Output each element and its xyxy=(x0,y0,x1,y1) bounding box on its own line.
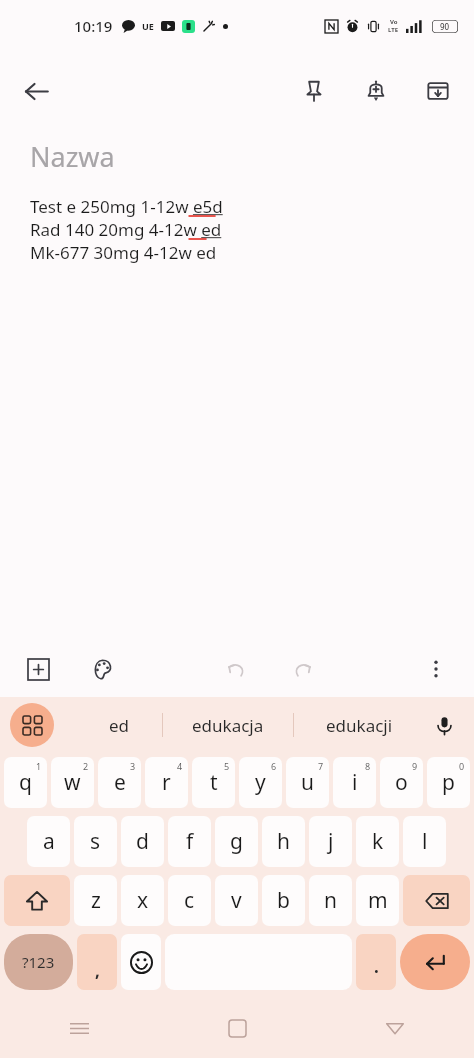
staticText: n xyxy=(324,886,337,915)
button[interactable]: u xyxy=(286,757,329,808)
staticText: b xyxy=(277,886,290,915)
button[interactable]: d xyxy=(121,816,164,867)
staticText: m xyxy=(368,886,388,915)
staticText: edukacja xyxy=(192,714,264,737)
button[interactable]: z xyxy=(74,875,117,926)
button[interactable]: Voice input xyxy=(424,705,464,745)
button[interactable]: c xyxy=(168,875,211,926)
button[interactable]: Back xyxy=(316,998,474,1058)
button[interactable]: Home xyxy=(158,998,316,1058)
staticText: 2 xyxy=(83,760,89,772)
staticText: f xyxy=(186,827,194,856)
staticText: 0 xyxy=(459,760,465,772)
button[interactable]: Emoji xyxy=(121,934,161,990)
button[interactable]: s xyxy=(74,816,117,867)
staticText: c xyxy=(184,886,195,915)
staticText: r xyxy=(162,768,171,797)
button[interactable]: p xyxy=(427,757,470,808)
staticText: LTE xyxy=(388,26,399,34)
staticText: z xyxy=(91,886,101,915)
button[interactable]: Back xyxy=(12,67,60,115)
staticText: Vo xyxy=(390,18,398,26)
button[interactable]: o xyxy=(380,757,423,808)
staticText: 6 xyxy=(271,760,277,772)
staticText: 8 xyxy=(365,760,371,772)
staticText: ?123 xyxy=(22,952,55,972)
button[interactable]: . xyxy=(356,934,396,990)
button[interactable]: x xyxy=(121,875,164,926)
staticText: 5 xyxy=(224,760,230,772)
button[interactable]: m xyxy=(356,875,399,926)
button[interactable]: More options xyxy=(414,647,458,691)
staticText: 1 xyxy=(36,760,42,772)
staticText: g xyxy=(230,827,243,856)
button[interactable]: Backspace xyxy=(403,875,470,926)
button[interactable]: e xyxy=(98,757,141,808)
staticText: q xyxy=(19,768,32,797)
staticText: x xyxy=(137,886,149,915)
staticText: Test e 250mg 1-12w e5d xyxy=(30,195,223,218)
button[interactable]: Enter xyxy=(400,934,470,990)
button[interactable]: w xyxy=(51,757,94,808)
staticText: 3 xyxy=(130,760,136,772)
staticText: o xyxy=(395,768,408,797)
staticText: e xyxy=(114,768,126,797)
staticText: u xyxy=(301,768,314,797)
button[interactable]: edukacja xyxy=(163,697,293,753)
button[interactable]: v xyxy=(215,875,258,926)
button[interactable]: l xyxy=(403,816,446,867)
button[interactable]: Recents xyxy=(0,998,158,1058)
staticText: i xyxy=(352,768,358,797)
button[interactable]: k xyxy=(356,816,399,867)
button[interactable]: ed xyxy=(76,697,162,753)
staticText: , xyxy=(95,959,100,982)
button[interactable]: Keyboard menu xyxy=(10,703,54,747)
staticText: Rad 140 20mg 4-12w ed xyxy=(30,218,222,241)
button[interactable]: Add reminder xyxy=(352,67,400,115)
staticText: 4 xyxy=(177,760,183,772)
button[interactable]: q xyxy=(4,757,47,808)
button[interactable]: i xyxy=(333,757,376,808)
staticText: y xyxy=(255,768,266,797)
staticText: s xyxy=(90,827,101,856)
button[interactable]: b xyxy=(262,875,305,926)
staticText: 7 xyxy=(318,760,324,772)
staticText: 90 xyxy=(440,21,450,32)
staticText: t xyxy=(210,768,218,797)
button[interactable]: Add xyxy=(16,647,60,691)
staticText: v xyxy=(231,886,242,915)
button[interactable]: Redo xyxy=(280,647,324,691)
staticText: ed xyxy=(109,714,130,737)
staticText: Mk-677 30mg 4-12w ed xyxy=(30,241,217,264)
staticText: h xyxy=(277,827,290,856)
staticText: k xyxy=(372,827,384,856)
button[interactable]: Nazwa xyxy=(30,138,115,175)
button[interactable]: , xyxy=(77,934,117,990)
button[interactable]: Colour xyxy=(80,647,124,691)
staticText: d xyxy=(136,827,149,856)
button[interactable]: t xyxy=(192,757,235,808)
button[interactable]: n xyxy=(309,875,352,926)
staticText: a xyxy=(43,827,55,856)
button[interactable]: a xyxy=(27,816,70,867)
staticText: edukacji xyxy=(326,714,393,737)
staticText: . xyxy=(374,955,379,978)
button[interactable]: y xyxy=(239,757,282,808)
button[interactable]: Undo xyxy=(214,647,258,691)
button[interactable]: r xyxy=(145,757,188,808)
button[interactable]: Test e 250mg 1-12w e5d xyxy=(30,195,223,264)
staticText: j xyxy=(328,827,334,856)
button[interactable]: edukacji xyxy=(294,697,424,753)
button[interactable]: ?123 xyxy=(4,934,73,990)
button[interactable]: Shift xyxy=(4,875,70,926)
button[interactable]: g xyxy=(215,816,258,867)
button[interactable]: j xyxy=(309,816,352,867)
button[interactable]: Pin xyxy=(290,67,338,115)
staticText: UE xyxy=(142,20,154,32)
button[interactable]: f xyxy=(168,816,211,867)
staticText: 9 xyxy=(412,760,418,772)
button[interactable]: Archive xyxy=(414,67,462,115)
staticText: w xyxy=(64,768,81,797)
button[interactable]: h xyxy=(262,816,305,867)
